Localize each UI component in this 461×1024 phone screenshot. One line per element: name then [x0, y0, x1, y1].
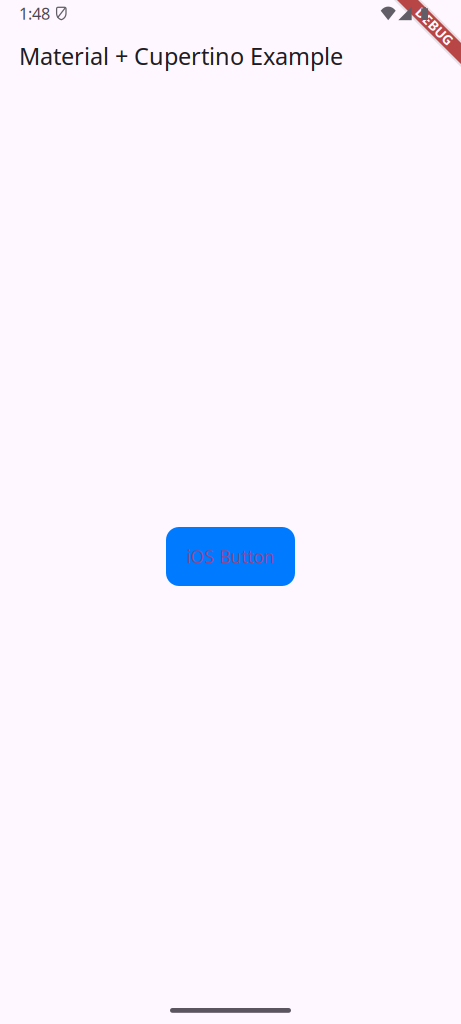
staticText: Material + Cupertino Example [19, 40, 343, 72]
staticText: DEBUG [411, 17, 458, 35]
staticText: iOS Button [186, 545, 274, 568]
staticText: 1:48 [19, 2, 50, 25]
button[interactable]: iOS Button [166, 527, 295, 586]
